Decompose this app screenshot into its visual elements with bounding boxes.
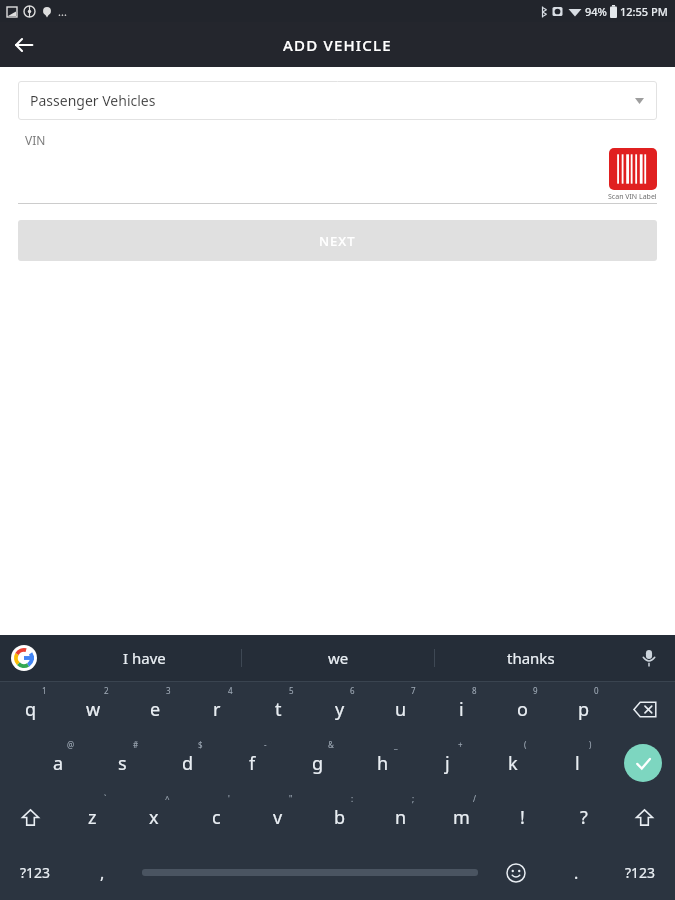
staticText: 8	[472, 685, 477, 696]
staticText: _	[394, 739, 398, 750]
staticText: !	[520, 805, 525, 830]
staticText: 9	[533, 685, 538, 696]
staticText: r	[213, 697, 221, 722]
staticText: 6	[350, 685, 355, 696]
button[interactable]: e	[124, 682, 186, 736]
staticText: y	[335, 697, 345, 722]
staticText: 12:55 PM	[620, 4, 668, 19]
button[interactable]: Scan VIN Label	[608, 148, 657, 202]
button[interactable]: p	[553, 682, 614, 736]
button[interactable]: Google	[8, 642, 40, 674]
staticText: thanks	[507, 648, 555, 668]
button[interactable]: w	[62, 682, 124, 736]
button[interactable]: Shift	[0, 790, 61, 845]
button[interactable]: g	[285, 736, 350, 790]
button[interactable]: u	[370, 682, 431, 736]
button[interactable]: z	[61, 790, 123, 845]
button[interactable]: x	[123, 790, 185, 845]
staticText: 4	[228, 685, 233, 696]
button[interactable]: ?	[553, 790, 614, 845]
staticText: l	[575, 751, 580, 776]
button[interactable]: .	[547, 845, 605, 900]
button[interactable]: Emoji	[485, 845, 547, 900]
staticText: s	[118, 751, 127, 776]
staticText: q	[25, 697, 37, 722]
button[interactable]: i	[431, 682, 492, 736]
staticText: :	[351, 793, 354, 804]
staticText: ?	[580, 805, 588, 830]
other: Backspace	[633, 701, 657, 718]
staticText: x	[149, 805, 159, 830]
button[interactable]: thanks	[435, 635, 627, 681]
button[interactable]: Space	[135, 845, 485, 900]
button[interactable]: ?123	[0, 845, 70, 900]
staticText: @	[67, 739, 75, 750]
staticText: e	[150, 697, 161, 722]
staticText: p	[578, 697, 590, 722]
button[interactable]: Voice input	[633, 642, 665, 674]
staticText: NEXT	[319, 232, 356, 250]
staticText: .	[574, 862, 579, 884]
button[interactable]: Shift	[614, 790, 675, 845]
staticText: f	[249, 751, 256, 776]
button[interactable]: ?123	[605, 845, 675, 900]
staticText: g	[312, 751, 324, 776]
button[interactable]: d	[155, 736, 220, 790]
button[interactable]: Passenger Vehicles	[18, 81, 657, 120]
staticText: u	[395, 697, 407, 722]
button[interactable]: v	[247, 790, 309, 845]
staticText: ,	[100, 862, 105, 884]
staticText: ?123	[625, 863, 656, 882]
button[interactable]: we	[242, 635, 434, 681]
button[interactable]: y	[309, 682, 370, 736]
staticText: 3	[166, 685, 171, 696]
button[interactable]: l	[545, 736, 610, 790]
button[interactable]: r	[186, 682, 248, 736]
button[interactable]: q	[0, 682, 62, 736]
button[interactable]: h	[350, 736, 415, 790]
button[interactable]: n	[370, 790, 431, 845]
button[interactable]: t	[248, 682, 309, 736]
button[interactable]: f	[220, 736, 285, 790]
staticText: n	[395, 805, 407, 830]
button[interactable]: a	[26, 736, 90, 790]
button[interactable]: Back	[0, 22, 48, 67]
button[interactable]: m	[431, 790, 492, 845]
staticText: -	[264, 739, 267, 750]
button[interactable]: !	[492, 790, 553, 845]
staticText: #	[133, 739, 139, 750]
staticText: ;	[412, 793, 415, 804]
staticText: (	[524, 739, 527, 750]
other: Enter	[624, 744, 662, 782]
staticText: i	[459, 697, 464, 722]
staticText: 2	[104, 685, 109, 696]
staticText: 0	[594, 685, 599, 696]
staticText: c	[212, 805, 221, 830]
button[interactable]: k	[480, 736, 545, 790]
staticText: I have	[123, 648, 166, 668]
staticText: o	[517, 697, 528, 722]
staticText: ADD VEHICLE	[283, 35, 392, 55]
button[interactable]: Backspace	[614, 682, 675, 736]
staticText: 94%	[585, 4, 607, 19]
staticText: ...	[58, 4, 67, 19]
button[interactable]: I have	[48, 635, 241, 681]
staticText: 7	[411, 685, 416, 696]
button[interactable]: c	[185, 790, 247, 845]
button[interactable]: Enter	[610, 736, 675, 790]
button[interactable]: o	[492, 682, 553, 736]
staticText: Scan VIN Label	[608, 192, 657, 202]
staticText: ^	[165, 793, 170, 804]
staticText: d	[182, 751, 194, 776]
staticText: 1	[42, 685, 47, 696]
staticText: t	[275, 697, 282, 722]
button[interactable]: ,	[70, 845, 135, 900]
button[interactable]: s	[90, 736, 155, 790]
staticText: m	[453, 805, 470, 830]
button[interactable]: j	[415, 736, 480, 790]
staticText: v	[273, 805, 283, 830]
button[interactable]: Shift	[614, 790, 675, 845]
staticText: /	[473, 793, 476, 804]
button[interactable]: b	[309, 790, 370, 845]
